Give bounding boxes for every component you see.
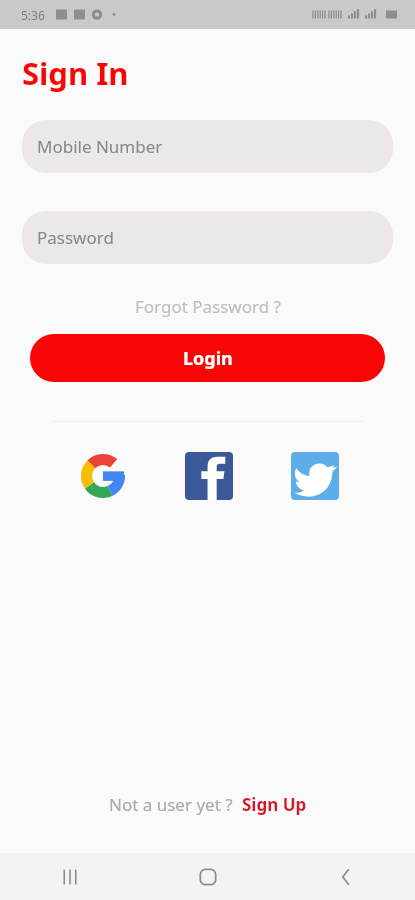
- button[interactable]: Sign Up: [242, 793, 307, 816]
- button[interactable]: Mobile Number: [22, 120, 393, 173]
- staticText: Login: [183, 346, 233, 371]
- staticText: Not a user yet ?: [109, 793, 233, 816]
- button[interactable]: Login: [30, 334, 385, 382]
- staticText: 5:36: [21, 7, 45, 23]
- button[interactable]: Recents: [0, 853, 139, 900]
- button[interactable]: Back: [277, 853, 415, 900]
- button[interactable]: Sign in with Facebook: [185, 452, 233, 500]
- staticText: Sign In: [22, 52, 129, 94]
- button[interactable]: Password: [22, 211, 393, 264]
- button[interactable]: Forgot Password ?: [0, 289, 415, 323]
- button[interactable]: Sign in with Twitter: [291, 452, 339, 500]
- button[interactable]: Sign in with Google: [79, 452, 127, 500]
- staticText: Mobile Number: [37, 135, 163, 158]
- staticText: Password: [37, 226, 114, 249]
- staticText: Forgot Password ?: [135, 295, 281, 318]
- button[interactable]: Home: [139, 853, 277, 900]
- staticText: Sign Up: [242, 793, 307, 816]
